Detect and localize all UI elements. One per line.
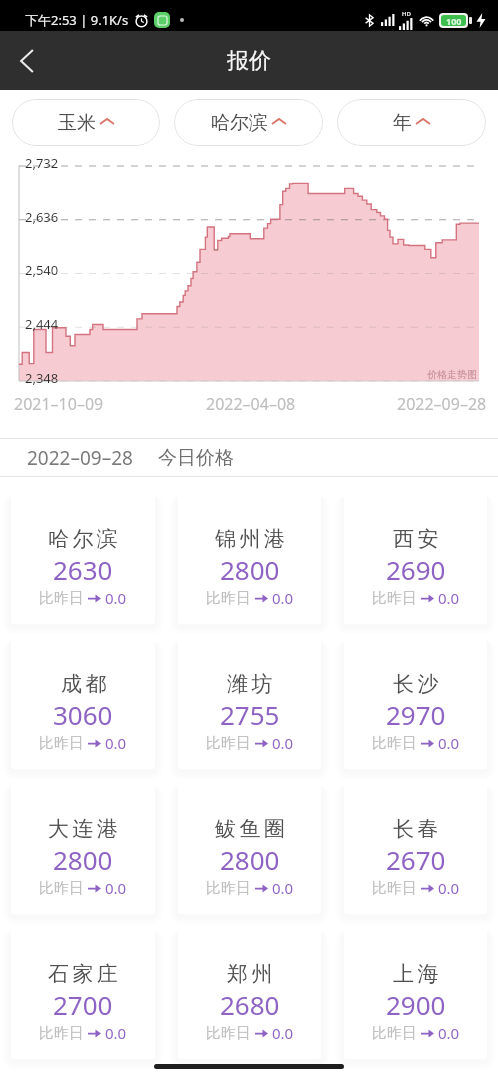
staticText: 大连港 — [48, 816, 122, 842]
staticText: 2,732 — [25, 154, 59, 172]
staticText: 长春 — [393, 816, 442, 842]
staticText: 比昨日 — [372, 879, 417, 898]
staticText: 2800 — [53, 842, 113, 877]
button[interactable]: 石家庄 — [11, 929, 155, 1059]
staticText: 上海 — [393, 961, 442, 987]
staticText: 100 — [446, 15, 462, 26]
staticText: 2022–09–28 — [397, 393, 487, 415]
staticText: 成都 — [61, 671, 110, 697]
staticText: 2700 — [53, 987, 113, 1022]
staticText: 0.0 — [438, 588, 460, 608]
staticText: 2022–04–08 — [206, 393, 296, 415]
staticText: 0.0 — [438, 1023, 460, 1043]
staticText: 2,540 — [25, 261, 59, 279]
staticText: 0.0 — [272, 878, 294, 898]
staticText: 比昨日 — [206, 879, 251, 898]
staticText: 比昨日 — [39, 734, 84, 753]
button[interactable]: 年 — [337, 99, 486, 146]
button[interactable]: 长春 — [344, 784, 487, 914]
button[interactable]: 锦州港 — [178, 494, 321, 624]
staticText: 2755 — [220, 697, 280, 732]
button[interactable]: Back — [0, 34, 54, 88]
staticText: 郑州 — [227, 961, 276, 987]
staticText: 西安 — [393, 526, 442, 552]
staticText: 比昨日 — [372, 1024, 417, 1043]
staticText: 0.0 — [105, 733, 127, 753]
staticText: 0.0 — [272, 1023, 294, 1043]
staticText: 报价 — [227, 47, 271, 75]
staticText: 2,444 — [25, 315, 59, 333]
staticText: 2630 — [53, 552, 113, 587]
staticText: 0.0 — [438, 878, 460, 898]
staticText: 鲅鱼圈 — [215, 816, 289, 842]
button[interactable]: 长沙 — [344, 639, 487, 769]
staticText: 0.0 — [105, 588, 127, 608]
staticText: 比昨日 — [372, 734, 417, 753]
staticText: 比昨日 — [372, 589, 417, 608]
staticText: 价格走势图 — [427, 368, 477, 381]
staticText: 2690 — [386, 552, 446, 587]
staticText: 3060 — [53, 697, 113, 732]
staticText: 2800 — [220, 842, 280, 877]
staticText: 0.0 — [105, 1023, 127, 1043]
staticText: 0.0 — [105, 878, 127, 898]
staticText: 石家庄 — [48, 961, 122, 987]
button[interactable]: 上海 — [344, 929, 487, 1059]
staticText: 2800 — [220, 552, 280, 587]
staticText: 哈尔滨 — [211, 111, 268, 135]
button[interactable]: 哈尔滨 — [174, 99, 323, 146]
staticText: 2,636 — [25, 208, 59, 226]
staticText: 0.0 — [272, 733, 294, 753]
staticText: 0.0 — [438, 733, 460, 753]
staticText: 锦州港 — [215, 526, 289, 552]
button[interactable]: 成都 — [11, 639, 155, 769]
staticText: 玉米 — [58, 111, 96, 135]
staticText: 下午2:53 | 9.1K/s — [25, 11, 129, 29]
staticText: 今日价格 — [158, 446, 234, 470]
staticText: 潍坊 — [227, 671, 276, 697]
staticText: 2022–09–28 — [27, 445, 133, 471]
staticText: 比昨日 — [206, 589, 251, 608]
button[interactable]: 郑州 — [178, 929, 321, 1059]
staticText: 哈尔滨 — [48, 526, 122, 552]
staticText: 比昨日 — [206, 1024, 251, 1043]
button[interactable]: 西安 — [344, 494, 487, 624]
staticText: 2,348 — [25, 369, 59, 387]
staticText: 比昨日 — [206, 734, 251, 753]
button[interactable]: 潍坊 — [178, 639, 321, 769]
staticText: 2900 — [386, 987, 446, 1022]
staticText: 比昨日 — [39, 879, 84, 898]
staticText: 0.0 — [272, 588, 294, 608]
button[interactable]: 玉米 — [12, 99, 160, 146]
button[interactable]: 大连港 — [11, 784, 155, 914]
staticText: 2670 — [386, 842, 446, 877]
staticText: 比昨日 — [39, 589, 84, 608]
staticText: 年 — [393, 111, 412, 135]
staticText: 2680 — [220, 987, 280, 1022]
staticText: 比昨日 — [39, 1024, 84, 1043]
staticText: 2970 — [386, 697, 446, 732]
button[interactable]: 鲅鱼圈 — [178, 784, 321, 914]
staticText: HD — [402, 10, 411, 18]
staticText: 长沙 — [393, 671, 442, 697]
button[interactable]: 哈尔滨 — [11, 494, 155, 624]
staticText: 2021–10–09 — [14, 393, 104, 415]
